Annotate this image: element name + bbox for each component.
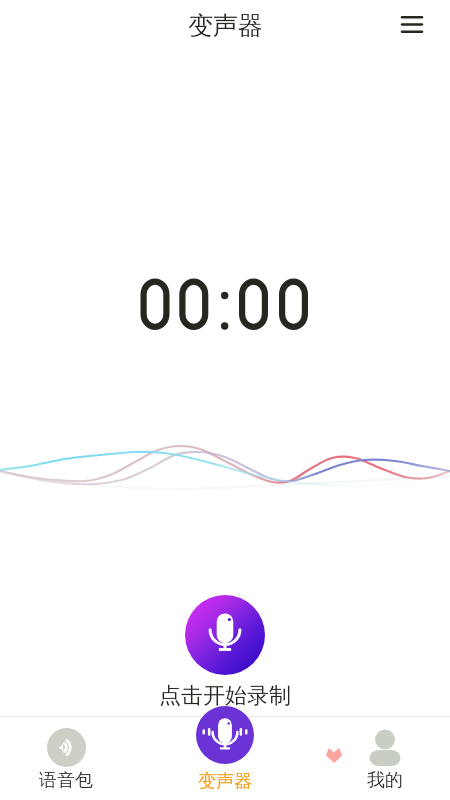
staticText: 变声器	[188, 10, 263, 41]
staticText: 我的	[367, 769, 403, 792]
button[interactable]: Start recording	[185, 595, 265, 675]
button[interactable]: Menu	[396, 8, 428, 40]
button[interactable]: 语音包	[6, 720, 126, 800]
staticText: 变声器	[198, 770, 252, 793]
button[interactable]: 变声器	[165, 704, 285, 800]
button[interactable]: 我的	[325, 720, 445, 800]
staticText: 点击开始录制	[159, 682, 291, 710]
staticText: 语音包	[39, 769, 93, 792]
